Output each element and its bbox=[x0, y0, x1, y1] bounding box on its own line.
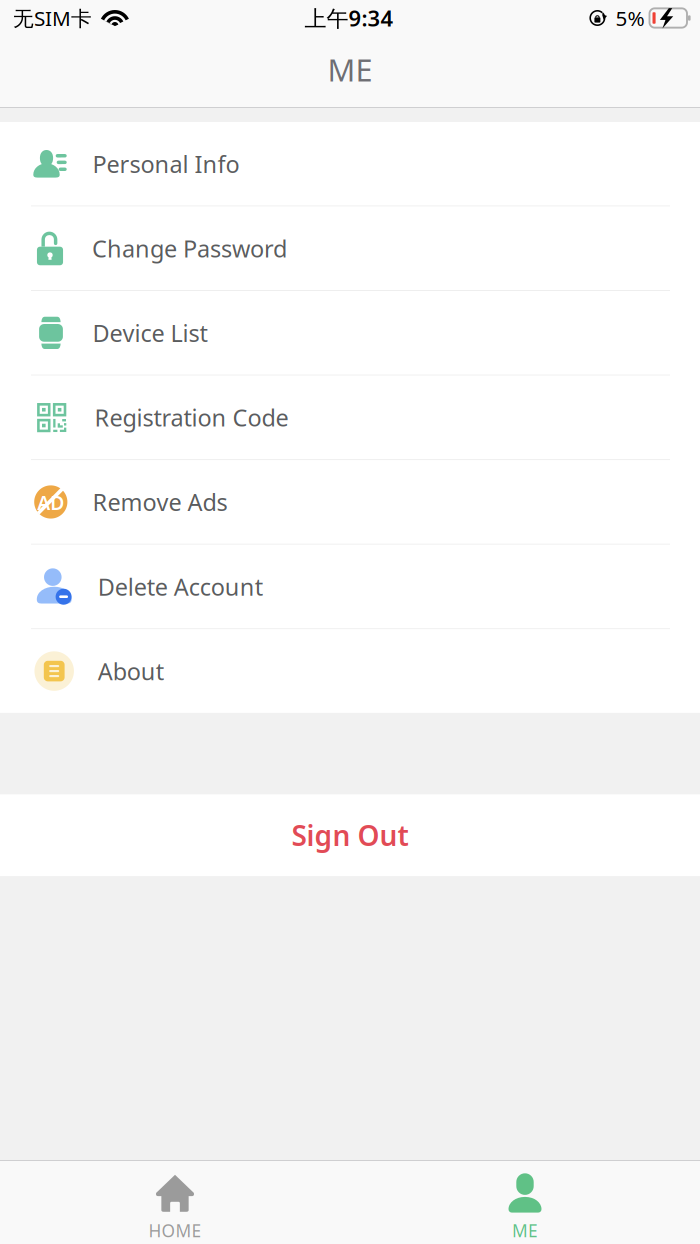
button[interactable]: HOME bbox=[0, 1161, 350, 1244]
staticText: HOME bbox=[148, 1219, 201, 1242]
staticText: ME bbox=[327, 49, 372, 90]
staticText: Change Password bbox=[92, 232, 287, 264]
staticText: About bbox=[98, 655, 164, 687]
staticText: AD bbox=[37, 489, 64, 516]
button[interactable]: Delete Account bbox=[0, 545, 700, 628]
staticText: Sign Out bbox=[291, 816, 408, 854]
staticText: Personal Info bbox=[93, 148, 240, 180]
staticText: ME bbox=[512, 1219, 538, 1242]
button[interactable]: Device List bbox=[0, 291, 700, 375]
staticText: 上午9:34 bbox=[304, 3, 393, 33]
button[interactable]: About bbox=[0, 629, 700, 713]
staticText: Remove Ads bbox=[93, 486, 228, 518]
staticText: 5% bbox=[615, 4, 644, 32]
staticText: 无SIM卡 bbox=[13, 4, 92, 32]
button[interactable]: ME bbox=[350, 1161, 700, 1244]
staticText: Registration Code bbox=[94, 401, 288, 433]
staticText: Delete Account bbox=[98, 570, 263, 602]
button[interactable]: Registration Code bbox=[0, 376, 700, 459]
button[interactable]: Change Password bbox=[0, 207, 700, 290]
button[interactable]: Personal Info bbox=[0, 122, 700, 205]
button[interactable]: AD bbox=[0, 460, 700, 544]
staticText: Device List bbox=[93, 317, 208, 349]
button[interactable]: Sign Out bbox=[0, 794, 700, 876]
